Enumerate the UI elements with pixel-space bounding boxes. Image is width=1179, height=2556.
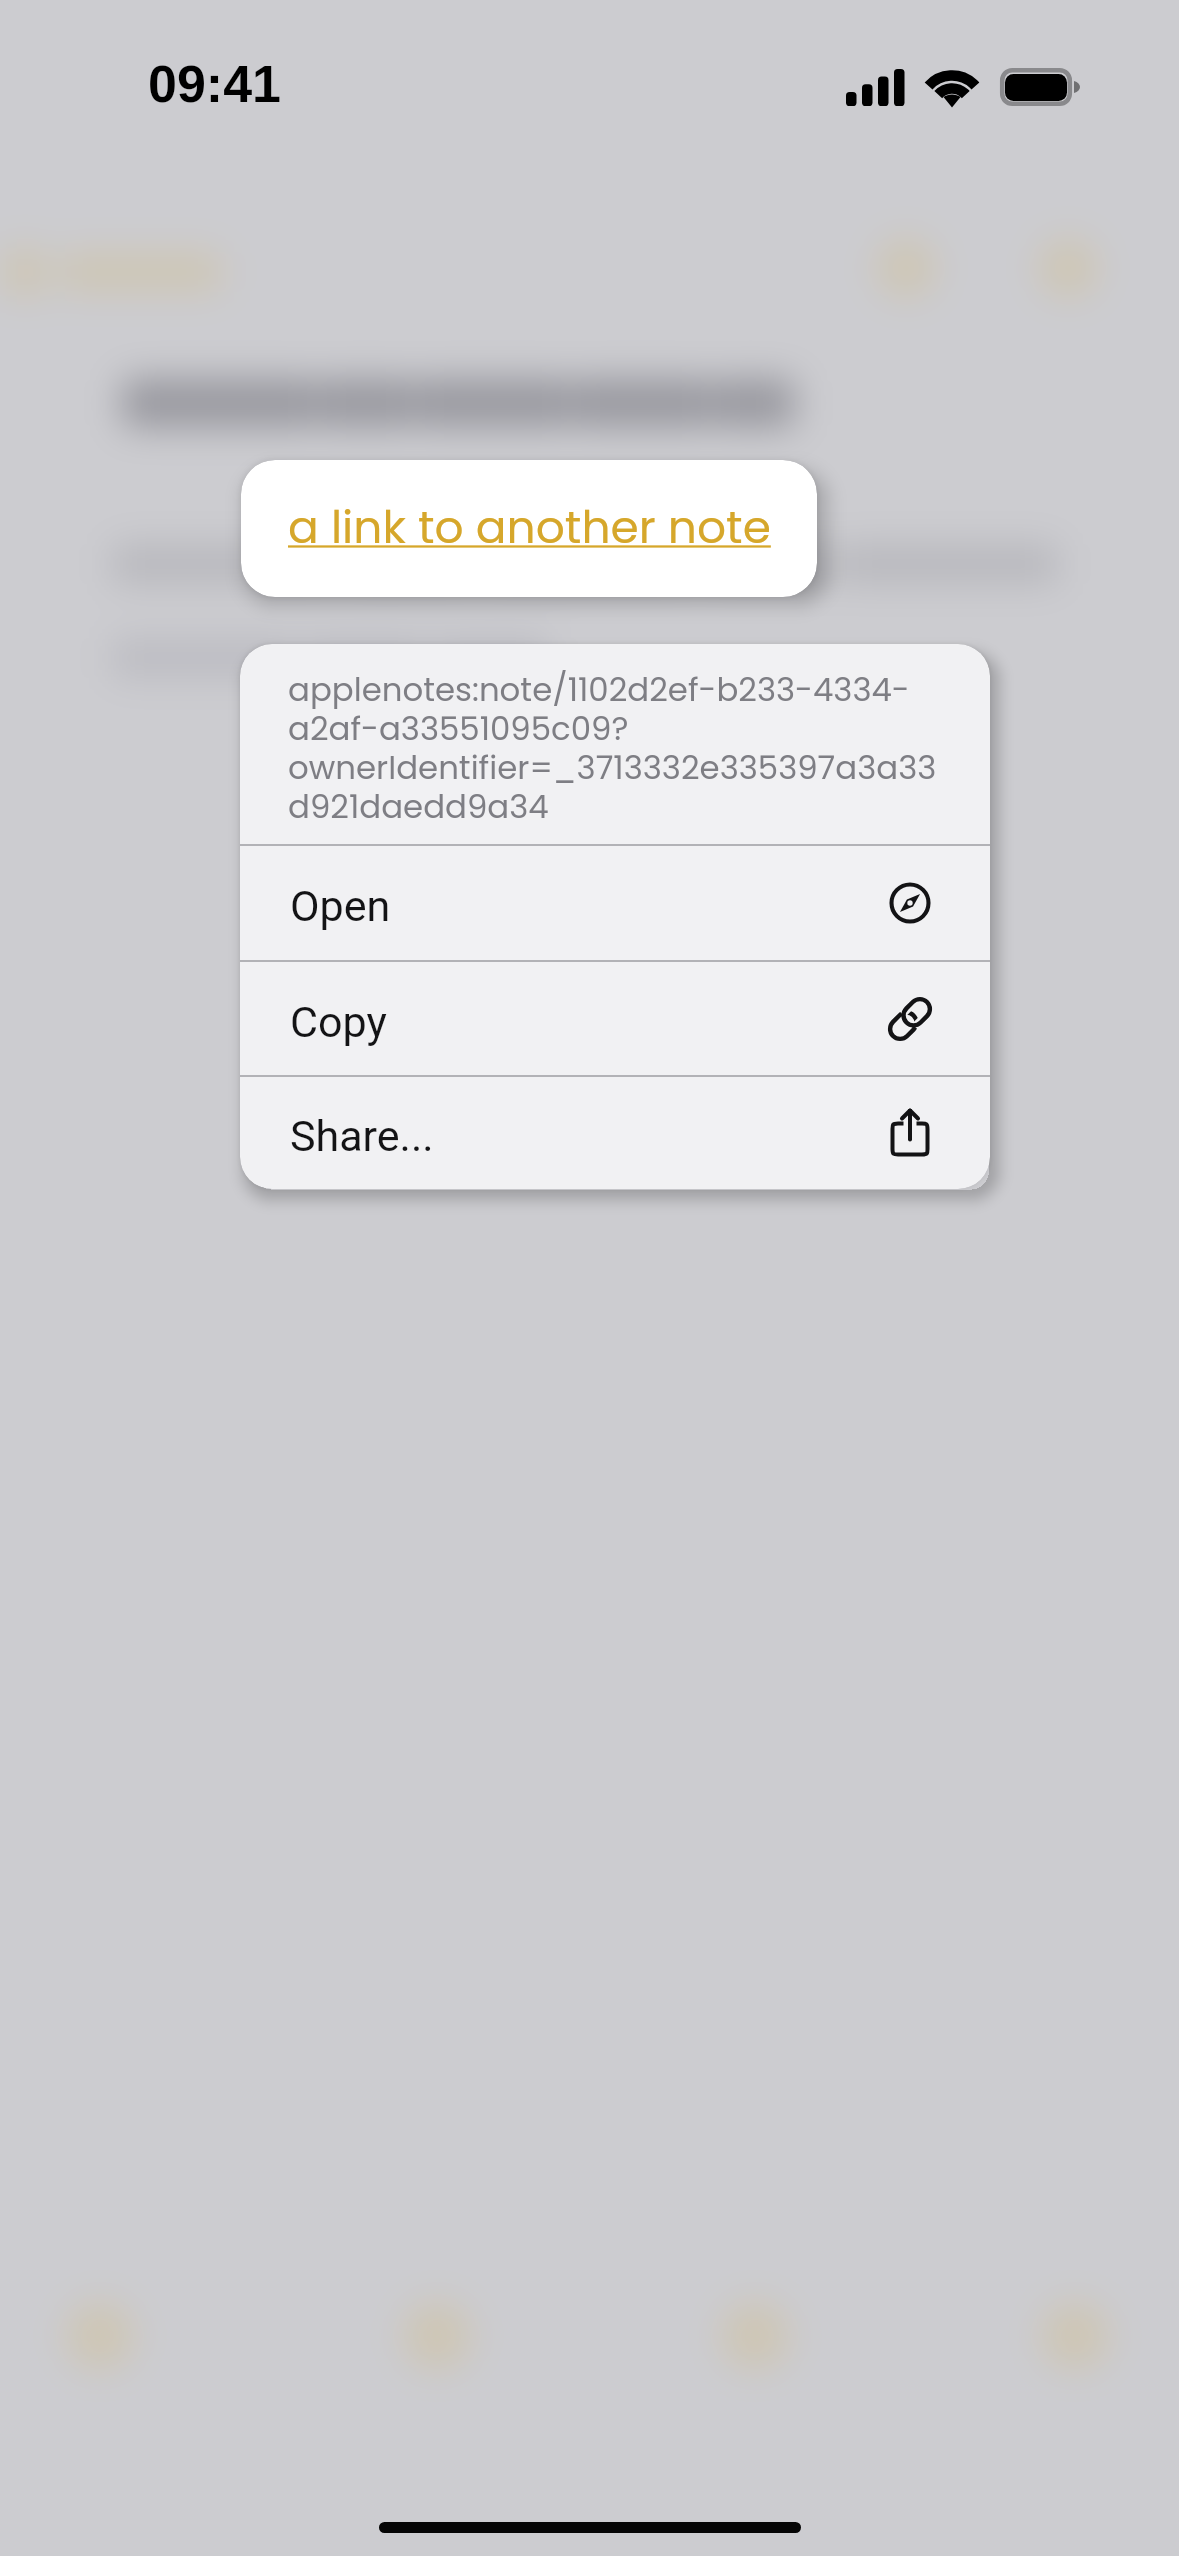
button[interactable]: Copy [240, 962, 990, 1075]
other: Open [883, 876, 937, 930]
staticText: a link to another note [288, 495, 771, 559]
staticText: 09:41 [148, 55, 281, 113]
button[interactable]: Share... [240, 1077, 990, 1189]
other: Copy link [883, 992, 937, 1046]
staticText: Copy [290, 997, 387, 1047]
button[interactable]: a link to another note [241, 460, 817, 597]
button[interactable]: Open [240, 846, 990, 960]
staticText: applenotes:note/1102d2ef-b233-4334- a2af… [288, 667, 937, 829]
other: Share [883, 1106, 937, 1160]
staticText: Open [290, 881, 391, 931]
staticText: Share... [290, 1111, 434, 1161]
